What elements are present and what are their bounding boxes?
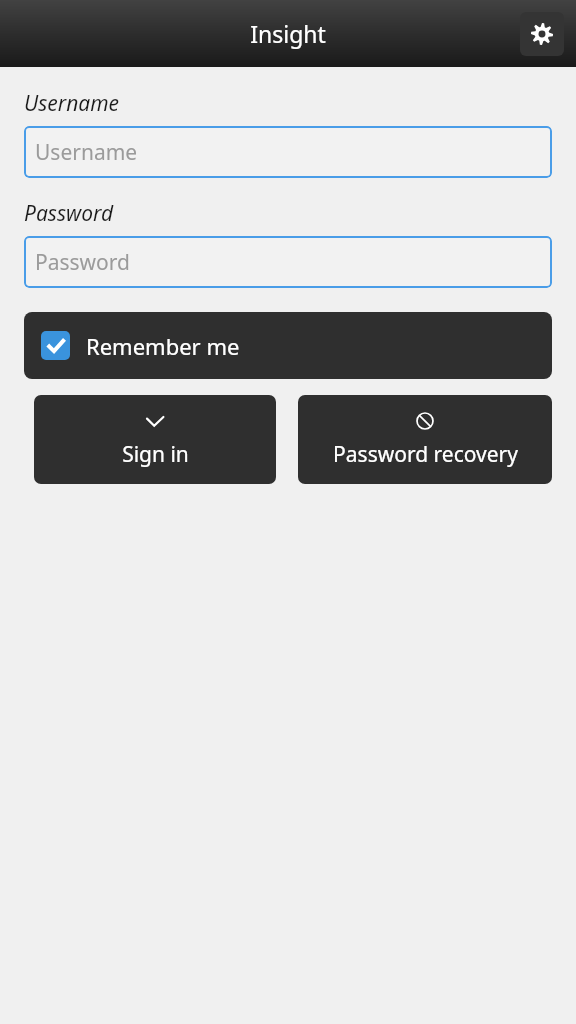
button[interactable]: Sign in — [34, 395, 276, 484]
staticText: Sign in — [122, 440, 189, 469]
button[interactable]: Password recovery — [298, 395, 552, 484]
staticText: Username — [35, 138, 138, 167]
button[interactable]: Settings — [520, 12, 564, 56]
staticText: Remember me — [86, 331, 240, 361]
staticText: Username — [24, 89, 120, 118]
staticText: Password — [24, 199, 114, 228]
staticText: Password — [35, 248, 130, 277]
button[interactable]: Username — [24, 126, 552, 178]
staticText: Insight — [250, 18, 326, 49]
button[interactable]: Remember me — [24, 312, 552, 379]
staticText: Password recovery — [333, 440, 518, 469]
button[interactable]: Password — [24, 236, 552, 288]
